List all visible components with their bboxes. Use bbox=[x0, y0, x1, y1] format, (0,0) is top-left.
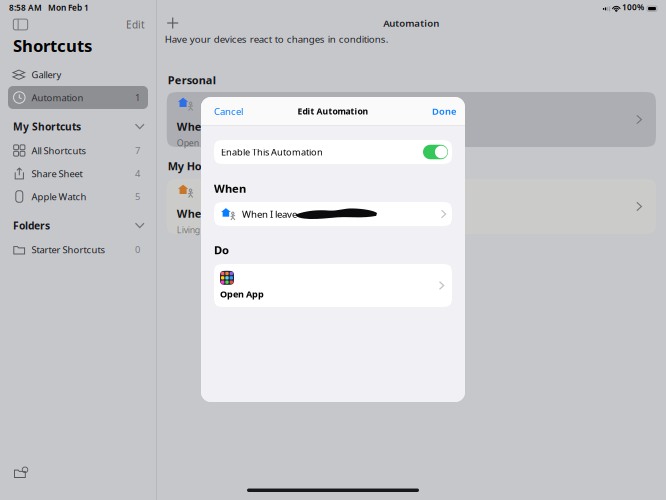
staticText: When bbox=[177, 119, 209, 134]
staticText: Shortcuts bbox=[13, 34, 92, 57]
staticText: 8:58 AM bbox=[9, 2, 42, 13]
staticText: Enable This Automation bbox=[221, 146, 323, 158]
button[interactable]: Apple Watch bbox=[8, 185, 148, 208]
staticText: When bbox=[214, 181, 246, 196]
staticText: Automation bbox=[383, 16, 439, 30]
staticText: 1 bbox=[135, 91, 140, 104]
staticText: Starter Shortcuts bbox=[32, 243, 106, 256]
staticText: Automation bbox=[32, 91, 84, 104]
staticText: Apple Watch bbox=[32, 190, 87, 203]
staticText: Open Ap bbox=[177, 137, 212, 149]
staticText: When I leave bbox=[242, 207, 297, 221]
staticText: 4 bbox=[135, 167, 140, 180]
button[interactable]: Edit bbox=[126, 15, 145, 33]
staticText: 100% bbox=[622, 1, 644, 13]
staticText: Done bbox=[432, 105, 456, 118]
staticText: Edit bbox=[126, 18, 145, 31]
staticText: 5 bbox=[135, 190, 140, 203]
staticText: All Shortcuts bbox=[32, 144, 87, 157]
button[interactable]: Gallery bbox=[8, 63, 148, 86]
staticText: Gallery bbox=[32, 68, 62, 81]
button[interactable]: When I leave bbox=[214, 202, 452, 226]
staticText: Personal bbox=[168, 73, 216, 87]
staticText: 0 bbox=[135, 243, 140, 256]
staticText: Do bbox=[214, 242, 229, 258]
button[interactable]: Share Sheet bbox=[8, 162, 148, 185]
button[interactable]: Open App bbox=[214, 264, 452, 307]
staticText: 7 bbox=[135, 144, 140, 157]
button[interactable]: Cancel bbox=[211, 97, 246, 125]
button[interactable]: Starter Shortcuts bbox=[8, 238, 148, 261]
staticText: Have your devices react to changes in co… bbox=[165, 32, 389, 46]
button[interactable]: Add Automation bbox=[163, 15, 183, 31]
button[interactable]: Automation bbox=[8, 86, 148, 109]
staticText: Cancel bbox=[214, 105, 243, 118]
button[interactable]: Enable This Automation bbox=[214, 140, 452, 164]
button[interactable]: All Shortcuts bbox=[8, 139, 148, 162]
button[interactable]: Done bbox=[429, 97, 456, 125]
staticText: Share Sheet bbox=[32, 167, 83, 180]
button[interactable]: New Folder bbox=[9, 464, 31, 482]
staticText: My Ho bbox=[168, 159, 202, 173]
button[interactable]: Toggle Sidebar bbox=[11, 15, 30, 33]
staticText: Edit Automation bbox=[297, 105, 368, 117]
staticText: When bbox=[177, 206, 209, 221]
staticText: Mon Feb 1 bbox=[48, 2, 89, 13]
staticText: Living R bbox=[177, 224, 207, 236]
staticText: Open App bbox=[220, 288, 264, 300]
staticText: Folders bbox=[13, 218, 50, 232]
staticText: My Shortcuts bbox=[13, 119, 81, 133]
